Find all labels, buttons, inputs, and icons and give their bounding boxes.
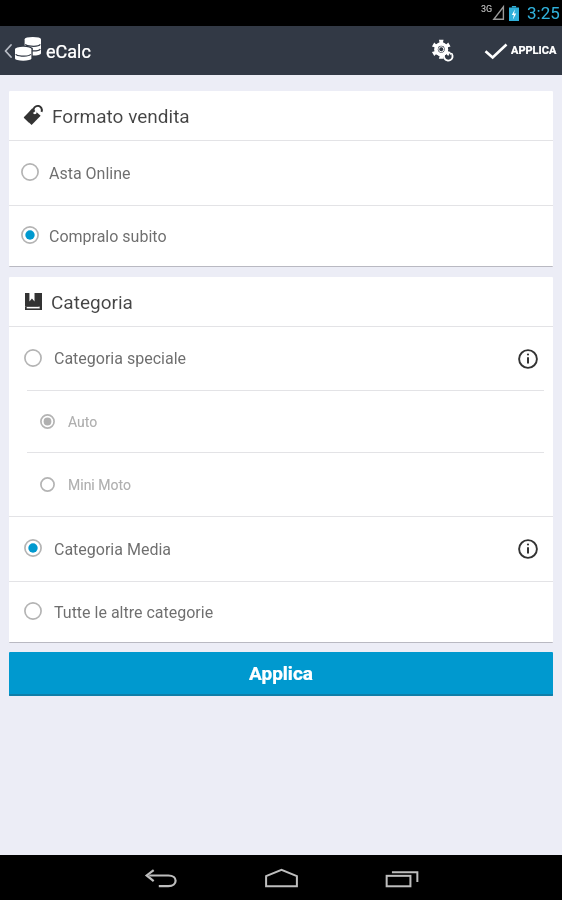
button[interactable]: Mini Moto xyxy=(9,453,553,516)
staticText: eCalc xyxy=(46,41,91,62)
staticText: Categoria xyxy=(51,291,133,313)
staticText: APPLICA xyxy=(511,44,557,57)
staticText: Tutte le altre categorie xyxy=(54,603,214,622)
button[interactable]: eCalc, indietro xyxy=(0,39,99,63)
button[interactable]: Impostazioni xyxy=(419,26,467,75)
staticText: Categoria speciale xyxy=(54,349,186,368)
staticText: Asta Online xyxy=(49,164,131,183)
button[interactable]: Auto xyxy=(9,391,553,452)
button[interactable]: Categoria speciale xyxy=(9,327,553,390)
button[interactable]: Home xyxy=(257,855,305,900)
staticText: Categoria Media xyxy=(54,540,171,559)
staticText: 3:25 xyxy=(527,3,560,23)
staticText: Mini Moto xyxy=(68,477,131,493)
button[interactable]: Indietro xyxy=(138,855,186,900)
staticText: Auto xyxy=(68,414,98,430)
button[interactable]: APPLICA xyxy=(467,26,562,75)
button[interactable]: Categoria Media xyxy=(9,517,553,581)
button[interactable]: Informazioni xyxy=(516,347,540,371)
button[interactable]: Tutte le altre categorie xyxy=(9,582,553,642)
staticText: Compralo subito xyxy=(49,227,167,246)
staticText: Applica xyxy=(249,662,313,684)
button[interactable]: Applica xyxy=(9,652,553,696)
button[interactable]: Recenti xyxy=(378,855,426,900)
button[interactable]: Asta Online xyxy=(9,141,553,205)
staticText: 3G xyxy=(481,4,493,15)
staticText: Formato vendita xyxy=(52,105,190,127)
button[interactable]: Compralo subito xyxy=(9,206,553,266)
button[interactable]: Informazioni xyxy=(516,537,540,561)
